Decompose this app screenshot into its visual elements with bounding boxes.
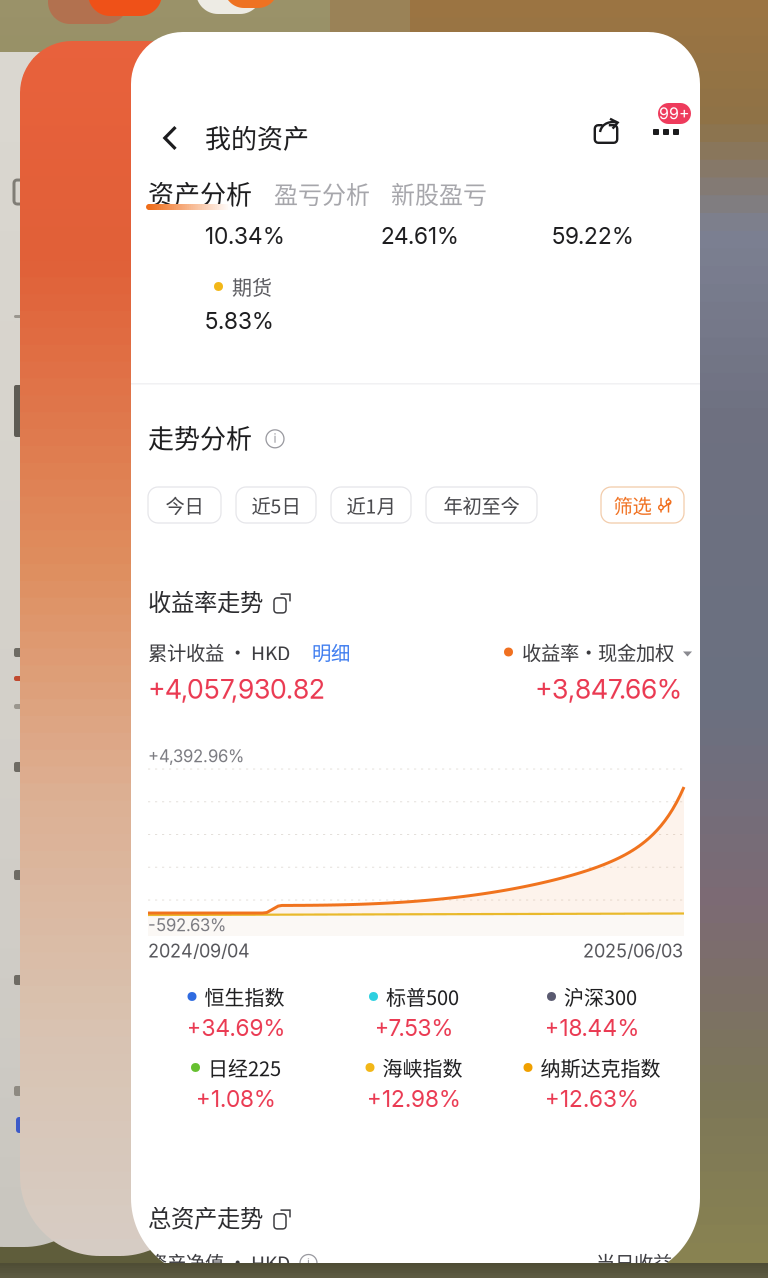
staticText: 59.22%: [552, 222, 634, 249]
staticText: 筛选: [613, 491, 651, 519]
button[interactable]: 我的资产: [205, 116, 315, 158]
button[interactable]: More options: [645, 112, 687, 152]
staticText: +34.69%: [186, 1014, 285, 1041]
button[interactable]: Back: [150, 118, 190, 158]
staticText: 纳斯达克指数: [540, 1053, 660, 1082]
staticText: 近1月: [346, 491, 395, 519]
staticText: 标普500: [386, 982, 459, 1011]
staticText: -592.63%: [148, 915, 226, 935]
staticText: 年初至今: [443, 491, 519, 519]
button[interactable]: 近1月: [331, 487, 411, 523]
staticText: +12.63%: [545, 1085, 639, 1112]
staticText: 2024/09/04: [148, 940, 250, 962]
staticText: +18.44%: [544, 1014, 639, 1041]
staticText: 海峡指数: [382, 1053, 462, 1082]
staticText: 沪深300: [564, 982, 637, 1011]
staticText: 明细: [312, 638, 350, 666]
button[interactable]: 资产分析: [148, 177, 252, 209]
staticText: 盈亏分析: [274, 176, 370, 210]
staticText: +3,847.66%: [535, 673, 682, 705]
staticText: i: [273, 431, 276, 446]
staticText: 99+: [659, 104, 690, 123]
staticText: 恒生指数: [204, 982, 284, 1011]
button[interactable]: 年初至今: [426, 487, 537, 523]
button[interactable]: 新股盈亏: [391, 178, 487, 208]
button[interactable]: Share: [585, 111, 627, 151]
staticText: 总资产走势: [148, 1200, 263, 1234]
staticText: 累计收益 · HKD: [148, 638, 290, 666]
staticText: +12.98%: [367, 1085, 461, 1112]
staticText: 收益率走势: [148, 584, 263, 618]
staticText: 走势分析: [148, 418, 252, 456]
staticText: 我的资产: [205, 118, 309, 156]
button[interactable]: 收益率·现金加权: [504, 638, 692, 666]
button[interactable]: 盈亏分析: [274, 178, 370, 208]
staticText: 日经225: [208, 1053, 281, 1082]
staticText: 24.61%: [381, 222, 459, 249]
staticText: 10.34%: [205, 222, 285, 249]
staticText: +7.53%: [374, 1014, 453, 1041]
staticText: 近5日: [251, 491, 300, 519]
staticText: +1.08%: [196, 1085, 276, 1112]
staticText: 新股盈亏: [391, 176, 487, 210]
staticText: i: [307, 1255, 310, 1270]
staticText: 收益率·现金加权: [522, 638, 674, 666]
button[interactable]: 明细: [290, 638, 350, 666]
button[interactable]: 近5日: [236, 487, 316, 523]
staticText: 资产净值 · HKD: [148, 1248, 290, 1276]
staticText: 今日: [165, 491, 203, 519]
staticText: 资产分析: [148, 174, 252, 212]
staticText: 2025/06/03: [583, 940, 683, 962]
staticText: 当日收益: [596, 1248, 672, 1276]
staticText: 5.83%: [205, 307, 274, 334]
staticText: +4,057,930.82: [148, 673, 325, 705]
staticText: +4,392.96%: [148, 746, 244, 766]
button[interactable]: 今日: [148, 487, 221, 523]
staticText: 期货: [232, 272, 272, 301]
button[interactable]: 筛选: [601, 487, 684, 523]
